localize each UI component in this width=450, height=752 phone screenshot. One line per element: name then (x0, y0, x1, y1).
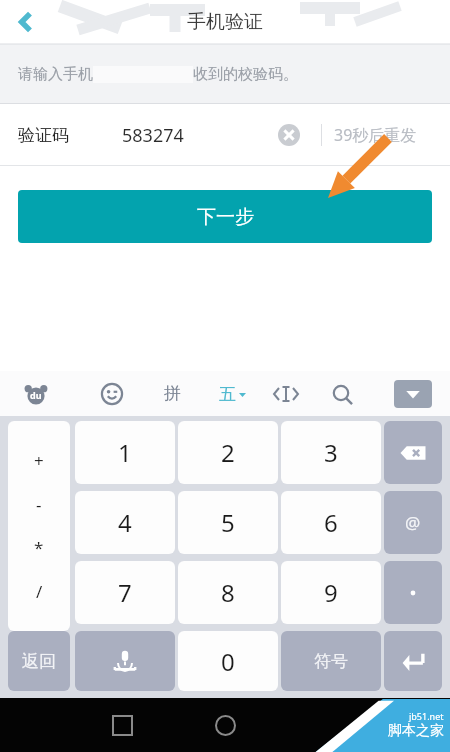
button[interactable]: @ (384, 491, 442, 554)
button[interactable]: Home (201, 701, 249, 749)
staticText: 收到的校验码。 (193, 65, 298, 84)
staticText: 返回 (22, 651, 56, 672)
button[interactable]: Back (4, 0, 48, 44)
button[interactable]: Backspace (384, 421, 442, 484)
button[interactable]: Voice input (75, 631, 175, 691)
staticText: - (36, 493, 42, 516)
button[interactable]: 6 (281, 491, 381, 554)
button[interactable]: 4 (75, 491, 175, 554)
button[interactable]: 五 (206, 372, 258, 416)
staticText: 583274 (122, 123, 184, 148)
button[interactable]: Recent apps (98, 701, 146, 749)
staticText: @ (405, 511, 421, 534)
staticText: 请输入手机 (18, 65, 93, 84)
button[interactable]: Operators (8, 421, 70, 631)
button[interactable]: 返回 (8, 631, 70, 691)
staticText: 拼 (164, 383, 181, 404)
staticText: 9 (324, 576, 338, 609)
button[interactable]: Period (384, 561, 442, 624)
staticText: 脚本之家 (388, 722, 444, 740)
button[interactable]: 2 (178, 421, 278, 484)
staticText: 下一步 (197, 205, 254, 229)
button[interactable]: 0 (178, 631, 278, 691)
staticText: 符号 (314, 651, 348, 672)
button[interactable]: 7 (75, 561, 175, 624)
staticText: jb51.net (409, 710, 444, 722)
staticText: 3 (324, 436, 338, 469)
button[interactable]: 5 (178, 491, 278, 554)
staticText: 5 (221, 506, 235, 539)
button[interactable]: Clear (271, 117, 307, 153)
button[interactable]: Search (320, 372, 364, 416)
staticText: du (30, 389, 42, 401)
staticText: 8 (221, 576, 235, 609)
button[interactable]: Hide keyboard (394, 380, 432, 408)
staticText: 2 (221, 436, 235, 469)
button[interactable]: 拼 (150, 371, 194, 415)
button[interactable]: 9 (281, 561, 381, 624)
staticText: 7 (118, 576, 132, 609)
staticText: + (34, 449, 44, 472)
staticText: / (36, 580, 43, 603)
staticText: 4 (118, 506, 132, 539)
button[interactable]: 下一步 (18, 190, 432, 243)
staticText: 五 (219, 384, 236, 405)
staticText: 0 (221, 645, 235, 678)
staticText: 39秒后重发 (334, 124, 417, 146)
button[interactable]: 符号 (281, 631, 381, 691)
staticText: 6 (324, 506, 338, 539)
staticText: * (34, 536, 44, 559)
button[interactable]: Enter (384, 631, 442, 691)
button[interactable]: 1 (75, 421, 175, 484)
button[interactable]: 3 (281, 421, 381, 484)
button[interactable]: 39秒后重发 (334, 113, 417, 157)
button[interactable]: Emoji (90, 372, 134, 416)
staticText: 验证码 (18, 125, 69, 146)
staticText: 手机验证 (187, 10, 263, 34)
button[interactable]: Move cursor (264, 372, 308, 416)
staticText: 1 (118, 436, 132, 469)
button[interactable]: 8 (178, 561, 278, 624)
button[interactable]: Baidu input settings (14, 372, 58, 416)
